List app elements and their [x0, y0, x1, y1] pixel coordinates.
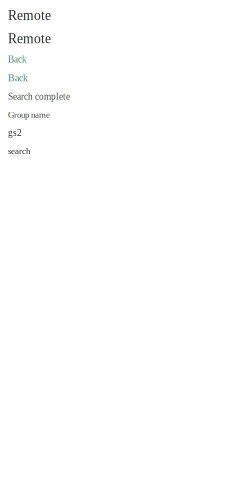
staticText: Remote: [8, 31, 51, 46]
staticText: Group name: [8, 110, 50, 120]
staticText: Back: [8, 54, 27, 64]
staticText: gs2: [8, 128, 22, 138]
staticText: Remote: [8, 8, 51, 23]
staticText: Back: [8, 72, 28, 84]
staticText: search: [8, 146, 30, 156]
staticText: Search complete: [8, 91, 70, 102]
